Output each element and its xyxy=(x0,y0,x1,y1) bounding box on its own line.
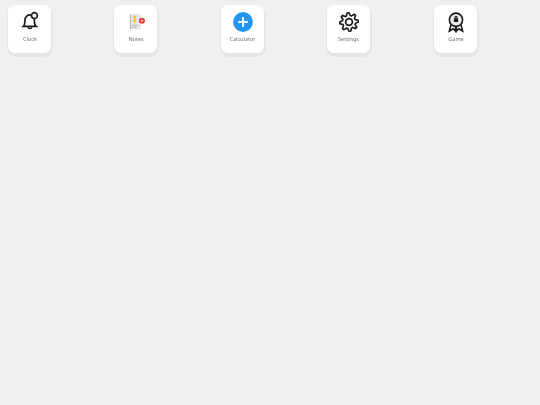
staticText: Notes xyxy=(128,35,144,42)
other: Game xyxy=(445,11,467,33)
button[interactable]: Clock xyxy=(8,5,51,53)
staticText: Game xyxy=(448,35,464,42)
other: Settings xyxy=(338,11,360,33)
button[interactable]: Notes xyxy=(114,5,157,53)
staticText: Clock xyxy=(23,35,37,42)
button[interactable]: Game xyxy=(434,5,477,53)
staticText: Settings xyxy=(338,35,359,42)
other: Calculator xyxy=(232,11,254,33)
other: Notes xyxy=(125,11,147,33)
staticText: Calculator xyxy=(229,35,256,42)
other: Clock xyxy=(19,11,41,33)
button[interactable]: Calculator xyxy=(221,5,264,53)
button[interactable]: Settings xyxy=(327,5,370,53)
